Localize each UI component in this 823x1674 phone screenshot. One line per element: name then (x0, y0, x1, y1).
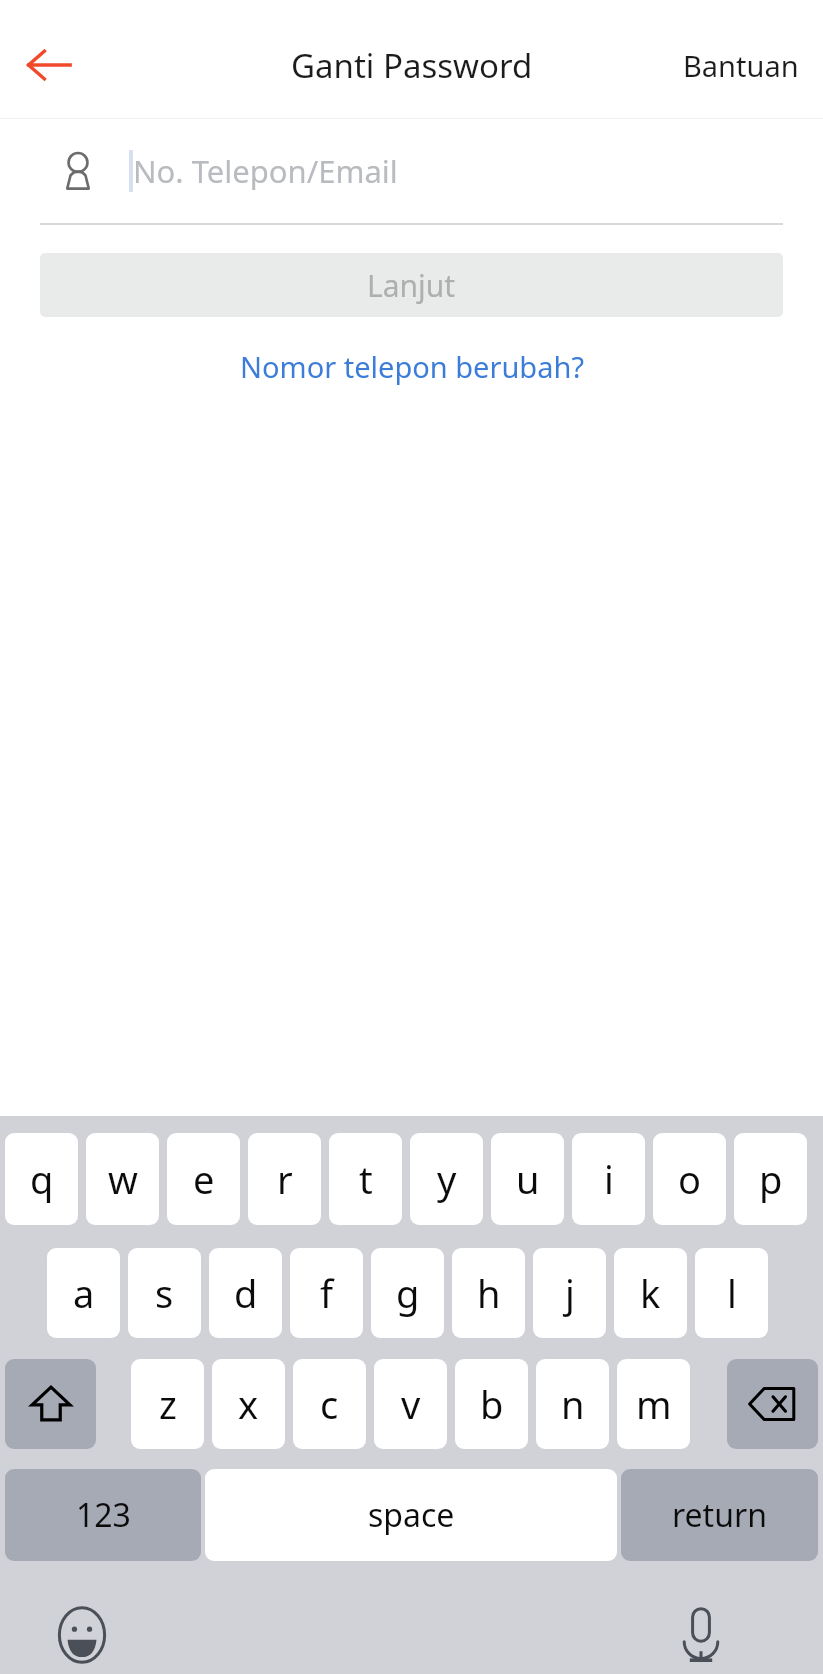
button[interactable]: l (695, 1248, 768, 1338)
staticText: c (320, 1378, 339, 1430)
staticText: e (193, 1153, 215, 1205)
button[interactable]: Nomor telepon berubah? (220, 339, 604, 394)
staticText: o (678, 1153, 701, 1205)
button[interactable]: u (491, 1133, 564, 1225)
staticText: z (159, 1378, 177, 1430)
staticText: g (396, 1267, 420, 1319)
button[interactable]: i (572, 1133, 645, 1225)
staticText: w (108, 1153, 138, 1205)
button[interactable]: z (131, 1359, 204, 1449)
staticText: r (277, 1153, 293, 1205)
button[interactable]: Voice input (655, 1589, 747, 1674)
button[interactable]: f (290, 1248, 363, 1338)
staticText: k (640, 1267, 661, 1319)
staticText: a (73, 1267, 95, 1319)
button[interactable]: Emoji (36, 1589, 128, 1674)
button[interactable]: v (374, 1359, 447, 1449)
button[interactable]: Back (10, 26, 88, 104)
staticText: x (238, 1378, 259, 1430)
button[interactable]: h (452, 1248, 525, 1338)
staticText: space (368, 1493, 455, 1537)
staticText: No. Telepon/Email (133, 150, 398, 192)
button[interactable]: space (205, 1469, 617, 1561)
button[interactable]: s (128, 1248, 201, 1338)
button[interactable]: d (209, 1248, 282, 1338)
staticText: Bantuan (683, 46, 799, 85)
button[interactable]: a (47, 1248, 120, 1338)
button[interactable]: Lanjut (40, 253, 783, 317)
button[interactable]: k (614, 1248, 687, 1338)
button[interactable]: r (248, 1133, 321, 1225)
button[interactable]: j (533, 1248, 606, 1338)
button[interactable]: Shift (5, 1359, 96, 1449)
staticText: Nomor telepon berubah? (240, 347, 584, 386)
button[interactable]: Backspace (727, 1359, 818, 1449)
button[interactable]: No. Telepon/Email (0, 119, 823, 223)
staticText: m (636, 1378, 672, 1430)
staticText: t (359, 1153, 373, 1205)
staticText: b (480, 1378, 504, 1430)
staticText: d (234, 1267, 258, 1319)
button[interactable]: Bantuan (659, 32, 823, 99)
staticText: Ganti Password (291, 43, 533, 88)
button[interactable]: 123 (5, 1469, 201, 1561)
staticText: y (437, 1153, 457, 1205)
staticText: j (565, 1267, 575, 1319)
staticText: 123 (76, 1493, 131, 1537)
button[interactable]: p (734, 1133, 807, 1225)
staticText: l (727, 1267, 737, 1319)
button[interactable]: e (167, 1133, 240, 1225)
button[interactable]: c (293, 1359, 366, 1449)
staticText: u (516, 1153, 540, 1205)
staticText: return (672, 1493, 767, 1537)
button[interactable]: t (329, 1133, 402, 1225)
staticText: i (604, 1153, 614, 1205)
staticText: Lanjut (367, 265, 456, 306)
staticText: f (320, 1267, 334, 1319)
staticText: p (759, 1153, 783, 1205)
staticText: h (477, 1267, 501, 1319)
button[interactable]: x (212, 1359, 285, 1449)
staticText: s (155, 1267, 174, 1319)
button[interactable]: g (371, 1248, 444, 1338)
button[interactable]: n (536, 1359, 609, 1449)
staticText: q (30, 1153, 54, 1205)
button[interactable]: q (5, 1133, 78, 1225)
staticText: v (401, 1378, 421, 1430)
button[interactable]: b (455, 1359, 528, 1449)
staticText: n (561, 1378, 585, 1430)
button[interactable]: w (86, 1133, 159, 1225)
button[interactable]: return (621, 1469, 818, 1561)
button[interactable]: m (617, 1359, 690, 1449)
button[interactable]: y (410, 1133, 483, 1225)
button[interactable]: o (653, 1133, 726, 1225)
